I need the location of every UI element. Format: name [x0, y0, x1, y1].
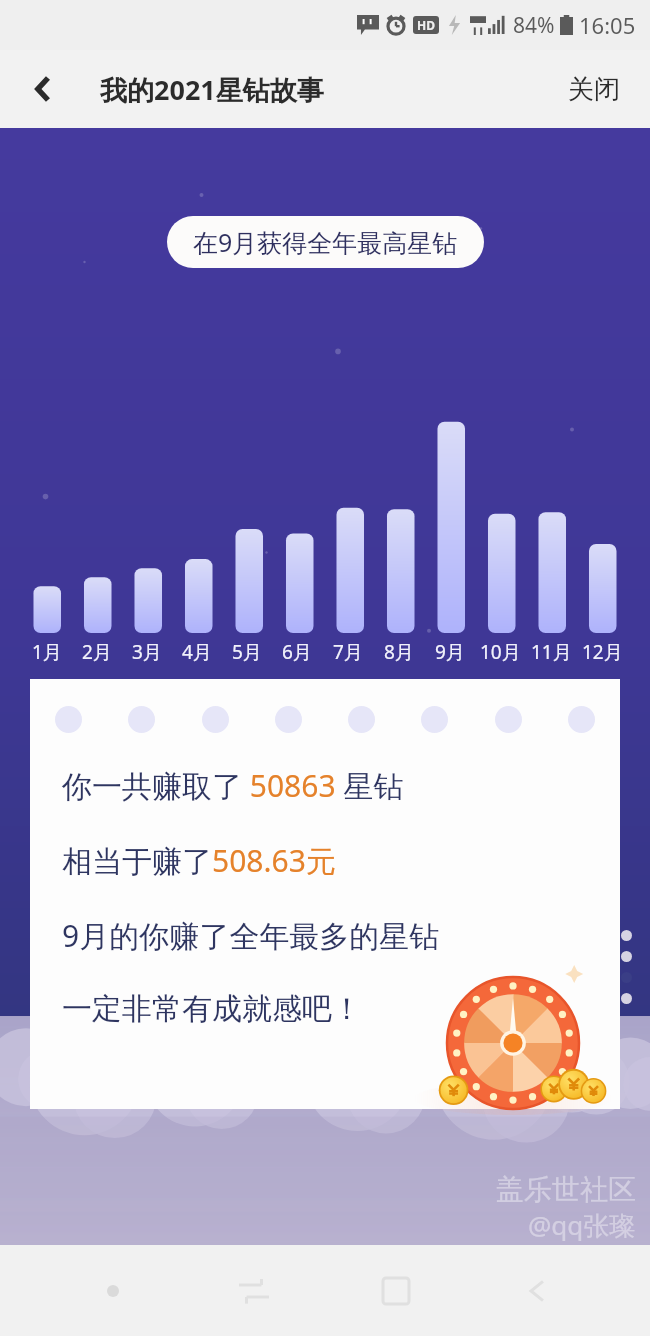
staticText: 6月 [282, 639, 312, 665]
staticText: 4月 [182, 639, 212, 665]
staticText: 3月 [132, 639, 162, 665]
staticText: 10月 [480, 639, 521, 665]
button[interactable]: 你一共赚取了 50863 星钻 [30, 679, 620, 1109]
button[interactable]: 关闭 [556, 65, 632, 114]
staticText: 9月的你赚了全年最多的星钻 [62, 915, 440, 956]
staticText: 1月 [32, 639, 62, 665]
button[interactable]: Recents [226, 1263, 282, 1319]
staticText: 9月 [435, 639, 465, 665]
staticText: @qq张璨 [528, 1207, 636, 1243]
staticText: 关闭 [568, 73, 620, 106]
staticText: 11月 [531, 639, 572, 665]
staticText: 相当于赚了508.63元 [62, 840, 336, 881]
staticText: 一定非常有成就感吧！ [62, 990, 362, 1028]
staticText: 在9月获得全年最高星钻 [193, 225, 458, 259]
staticText: HD [417, 17, 435, 33]
staticText: 盖乐世社区 [496, 1172, 636, 1207]
staticText: 84% [513, 11, 555, 40]
button[interactable]: Back [22, 67, 66, 111]
button[interactable]: 在9月获得全年最高星钻 [167, 216, 484, 268]
button[interactable]: Menu [85, 1263, 141, 1319]
staticText: 我的2021星钻故事 [100, 71, 324, 108]
staticText: 8月 [384, 639, 414, 665]
staticText: 5月 [232, 639, 262, 665]
staticText: 你一共赚取了 50863 星钻 [62, 765, 404, 806]
staticText: 16:05 [579, 10, 636, 40]
staticText: 2月 [82, 639, 112, 665]
button[interactable]: Home [368, 1263, 424, 1319]
staticText: 12月 [582, 639, 623, 665]
staticText: 7月 [333, 639, 363, 665]
